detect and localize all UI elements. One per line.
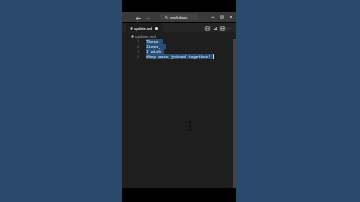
button[interactable]: Open Preview <box>203 23 211 33</box>
button[interactable]: Maximize <box>217 12 227 22</box>
staticText: update.md <box>134 26 153 31</box>
staticText: markdown <box>170 15 188 20</box>
button[interactable]: markdown <box>160 14 198 20</box>
button[interactable]: Preview to the side <box>211 23 219 33</box>
staticText: I wish <box>146 49 161 54</box>
button[interactable]: More actions <box>225 23 232 33</box>
button[interactable]: update.md <box>126 23 163 33</box>
staticText: they were joined together! <box>146 54 211 59</box>
staticText: These <box>146 39 159 44</box>
staticText: 3 <box>137 49 140 54</box>
button[interactable]: Split editor <box>218 23 226 33</box>
button[interactable]: update.md <box>131 33 156 39</box>
staticText: lines, <box>146 44 161 49</box>
button[interactable]: Minimize <box>208 12 218 22</box>
button[interactable]: Forward <box>143 14 151 22</box>
button[interactable]: Back <box>134 14 142 22</box>
button[interactable]: Close <box>226 12 236 22</box>
staticText: 1 <box>137 39 140 44</box>
staticText: 2 <box>137 44 140 49</box>
staticText: update.md <box>135 34 156 39</box>
staticText: 4 <box>137 54 140 59</box>
